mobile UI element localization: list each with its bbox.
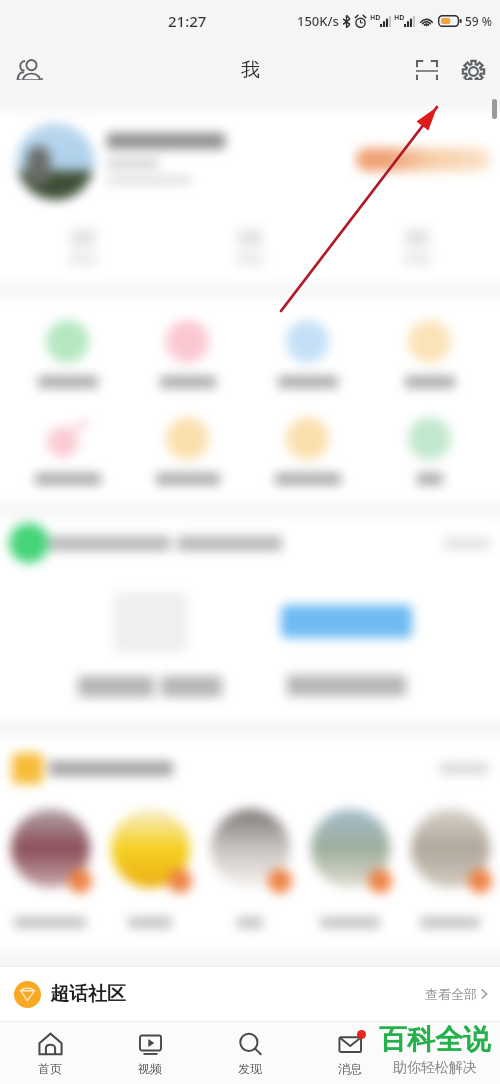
button[interactable]: Scan QR code: [404, 48, 450, 94]
staticText: 超话社区: [50, 982, 126, 1006]
button[interactable]: [356, 148, 490, 171]
staticText: 查看全部: [425, 986, 477, 1002]
button[interactable]: Add friends: [8, 48, 54, 94]
staticText: 视频: [138, 1061, 162, 1076]
staticText: 150K/s: [297, 12, 339, 30]
button[interactable]: [200, 809, 300, 928]
button[interactable]: 发现: [200, 1022, 300, 1084]
button[interactable]: Settings: [450, 48, 496, 94]
button[interactable]: 视频: [100, 1022, 200, 1084]
button[interactable]: [0, 417, 125, 485]
button[interactable]: [166, 211, 333, 283]
staticText: 发现: [238, 1061, 262, 1076]
staticText: 助你轻松解决: [393, 1059, 477, 1077]
button[interactable]: [125, 417, 250, 485]
staticText: 59 %: [465, 13, 493, 29]
button[interactable]: [250, 569, 500, 696]
button[interactable]: [125, 320, 250, 388]
staticText: HD: [370, 13, 381, 23]
button[interactable]: [0, 211, 166, 283]
staticText: 首页: [38, 1061, 62, 1076]
button[interactable]: [375, 320, 500, 388]
button[interactable]: [0, 809, 100, 928]
button[interactable]: [250, 320, 375, 388]
staticText: 消息: [338, 1061, 362, 1076]
button[interactable]: 超话社区: [0, 966, 500, 1022]
button[interactable]: [12, 736, 488, 800]
staticText: 百科全说: [379, 1022, 491, 1057]
button[interactable]: [0, 569, 250, 697]
button[interactable]: [300, 809, 400, 928]
button[interactable]: [400, 809, 500, 928]
staticText: 我: [241, 58, 260, 82]
button[interactable]: [333, 211, 500, 283]
button[interactable]: 首页: [0, 1022, 100, 1084]
button[interactable]: 消息: [300, 1022, 400, 1084]
button[interactable]: [0, 320, 125, 388]
button[interactable]: [9, 517, 490, 569]
button[interactable]: [250, 417, 375, 485]
button[interactable]: [100, 809, 200, 928]
button[interactable]: [0, 111, 500, 211]
staticText: 21:27: [168, 11, 207, 31]
staticText: HD: [394, 13, 405, 23]
button[interactable]: [375, 417, 500, 485]
